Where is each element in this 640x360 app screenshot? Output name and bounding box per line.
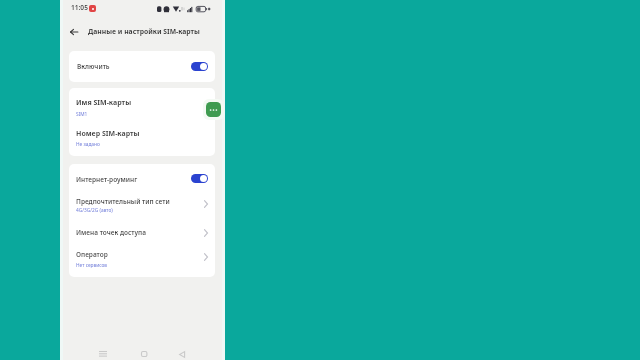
- staticText: Интернет-роуминг: [76, 175, 138, 184]
- staticText: Предпочтительный тип сети: [76, 197, 170, 206]
- staticText: Оператор: [76, 250, 108, 259]
- staticText: 11:05: [71, 3, 88, 12]
- button[interactable]: Включить: [69, 51, 215, 82]
- staticText: Данные и настройки SIM-карты: [88, 27, 200, 36]
- button[interactable]: [69, 88, 215, 122]
- staticText: 4G/3G/2G (авто): [76, 207, 113, 214]
- button[interactable]: [191, 174, 208, 183]
- staticText: Имена точек доступа: [76, 228, 146, 237]
- staticText: Не задано: [76, 141, 100, 148]
- button[interactable]: Оператор: [69, 248, 215, 277]
- staticText: Включить: [77, 62, 191, 71]
- button[interactable]: Интернет-роуминг: [69, 164, 215, 190]
- button[interactable]: [137, 348, 151, 360]
- button[interactable]: [69, 122, 215, 155]
- button[interactable]: [175, 348, 189, 360]
- button[interactable]: [68, 26, 80, 38]
- button[interactable]: Имена точек доступа: [69, 220, 215, 248]
- staticText: SIM1: [76, 111, 88, 118]
- staticText: Имя SIM-карты: [76, 98, 132, 108]
- button[interactable]: [191, 62, 208, 71]
- button[interactable]: [206, 102, 221, 117]
- button[interactable]: Предпочтительный тип сети: [69, 190, 215, 220]
- button[interactable]: [96, 348, 110, 360]
- staticText: Нет сервисов: [76, 262, 108, 269]
- staticText: Номер SIM-карты: [76, 129, 140, 139]
